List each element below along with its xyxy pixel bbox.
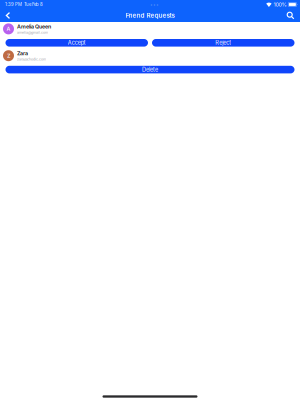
staticText: Z: [7, 52, 10, 59]
button[interactable]: Search: [284, 9, 297, 22]
staticText: Reject: [215, 39, 231, 46]
staticText: amelia@gmail.com: [17, 30, 48, 34]
staticText: Accept: [68, 39, 86, 46]
staticText: A: [6, 26, 10, 32]
button[interactable]: Delete: [5, 66, 294, 73]
staticText: •••: [150, 2, 159, 7]
button[interactable]: Back: [1, 9, 15, 22]
staticText: 100%: [274, 1, 287, 8]
staticText: Zara: [17, 50, 28, 57]
staticText: Amelia Queen: [17, 23, 51, 30]
button[interactable]: Reject: [152, 39, 294, 47]
button[interactable]: Accept: [5, 39, 148, 47]
staticText: Friend Requests: [125, 12, 174, 19]
staticText: zara@chodic.com: [17, 57, 46, 61]
staticText: 1:39 PM Tue Feb 8: [5, 2, 43, 7]
staticText: Delete: [142, 66, 158, 73]
